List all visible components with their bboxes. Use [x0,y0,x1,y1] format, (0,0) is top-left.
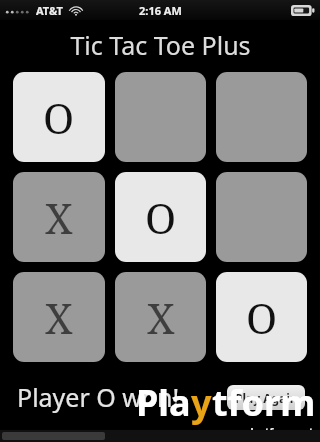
button[interactable]: O [115,172,206,262]
button[interactable]: O [216,272,307,362]
staticText: Player O won! [17,380,180,414]
staticText: Tic Tac Toe Plus [70,28,251,62]
button[interactable]: X [13,272,105,362]
staticText: Pla [136,378,191,427]
staticText: X [45,289,73,346]
button[interactable]: X [13,172,105,262]
button[interactable]: Play Again [227,385,305,410]
button[interactable]: Empty cell [115,72,206,162]
staticText: X [45,189,73,246]
staticText: O [246,289,278,346]
staticText: www.playtform.net [216,425,314,439]
staticText: X [147,289,175,346]
staticText: tform [212,378,316,427]
button[interactable]: Empty cell [216,172,307,262]
staticText: O [43,89,75,146]
staticText: AT&T [36,3,63,18]
button[interactable]: O [13,72,105,162]
button[interactable]: Empty cell [216,72,307,162]
button[interactable]: X [115,272,206,362]
staticText: y [191,378,212,427]
staticText: Play Again [235,390,298,406]
staticText: 2:16 AM [139,3,182,18]
staticText: O [145,189,177,246]
